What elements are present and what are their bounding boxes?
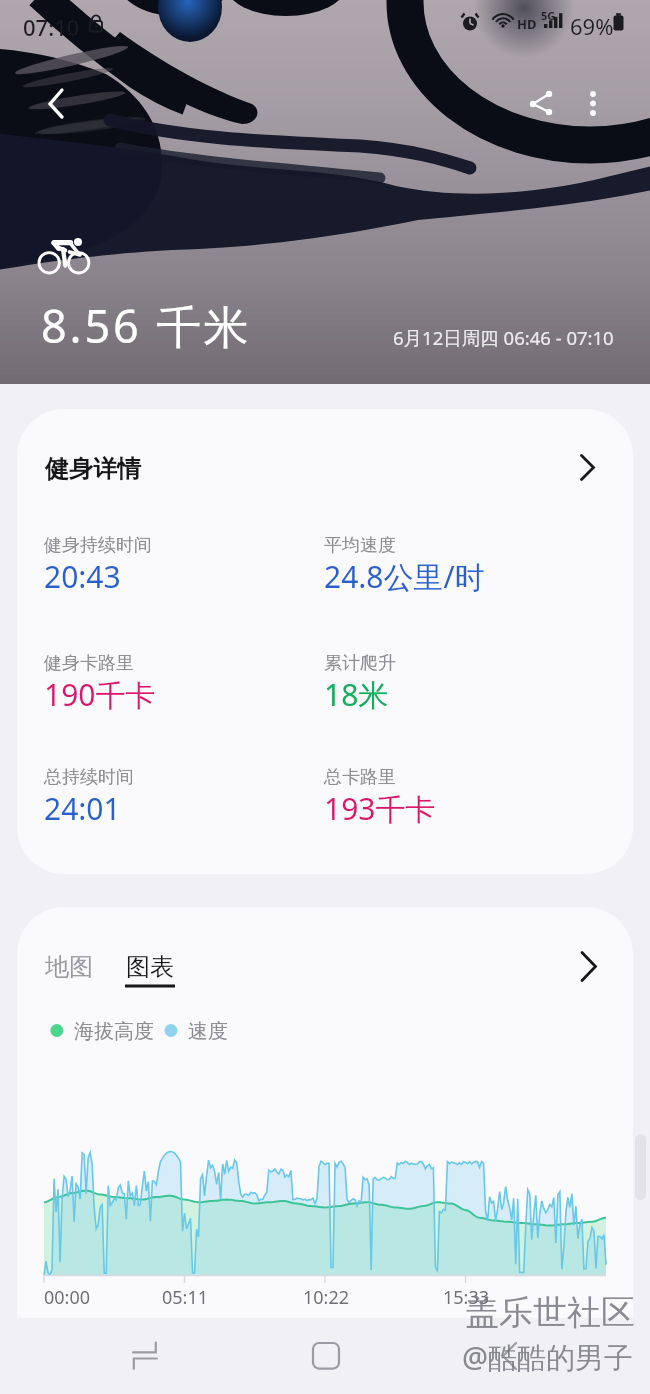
button[interactable]: 健身详情 (17, 409, 633, 874)
button[interactable]: 地图 (39, 943, 97, 987)
staticText: 速度 (188, 1019, 228, 1044)
staticText: 15:33 (443, 1285, 490, 1310)
staticText: 69% (570, 11, 614, 41)
staticText: 海拔高度 (74, 1019, 154, 1044)
staticText: 00:00 (44, 1285, 91, 1310)
staticText: 平均速度 (324, 534, 396, 557)
staticText: 健身卡路里 (44, 652, 134, 675)
staticText: 5G (541, 8, 556, 23)
staticText: 193千卡 (324, 788, 436, 829)
button[interactable]: Back (24, 78, 76, 130)
staticText: 6月12日周四 06:46 - 07:10 (393, 325, 614, 350)
staticText: 24.8公里/时 (324, 556, 485, 597)
button[interactable]: Back (478, 1330, 542, 1382)
staticText: 健身持续时间 (44, 534, 152, 557)
button[interactable]: Share (515, 78, 567, 130)
staticText: 10:22 (303, 1285, 350, 1310)
staticText: 24:01 (44, 788, 121, 829)
staticText: 07:10 (23, 12, 80, 42)
staticText: 盖乐世社区 (465, 1291, 635, 1334)
button[interactable]: Recent apps (110, 1330, 174, 1382)
staticText: HD (517, 15, 537, 33)
staticText: 总持续时间 (44, 766, 134, 789)
staticText: 健身详情 (45, 454, 141, 484)
staticText: 累计爬升 (324, 652, 396, 675)
staticText: 总卡路里 (324, 766, 396, 789)
staticText: @酷酷的男子 (462, 1337, 634, 1377)
button[interactable]: More options (567, 78, 619, 130)
staticText: 地图 (45, 952, 93, 982)
button[interactable]: 图表 (120, 943, 178, 993)
staticText: 190千卡 (44, 674, 156, 715)
staticText: 8.56 千米 (41, 295, 252, 356)
staticText: 18米 (324, 674, 389, 715)
button[interactable]: Open chart (561, 933, 625, 997)
staticText: 20:43 (44, 556, 121, 597)
staticText: 图表 (126, 952, 174, 982)
button[interactable]: Home (294, 1330, 358, 1382)
button[interactable]: Open workout details (560, 435, 624, 499)
staticText: 05:11 (162, 1285, 209, 1310)
